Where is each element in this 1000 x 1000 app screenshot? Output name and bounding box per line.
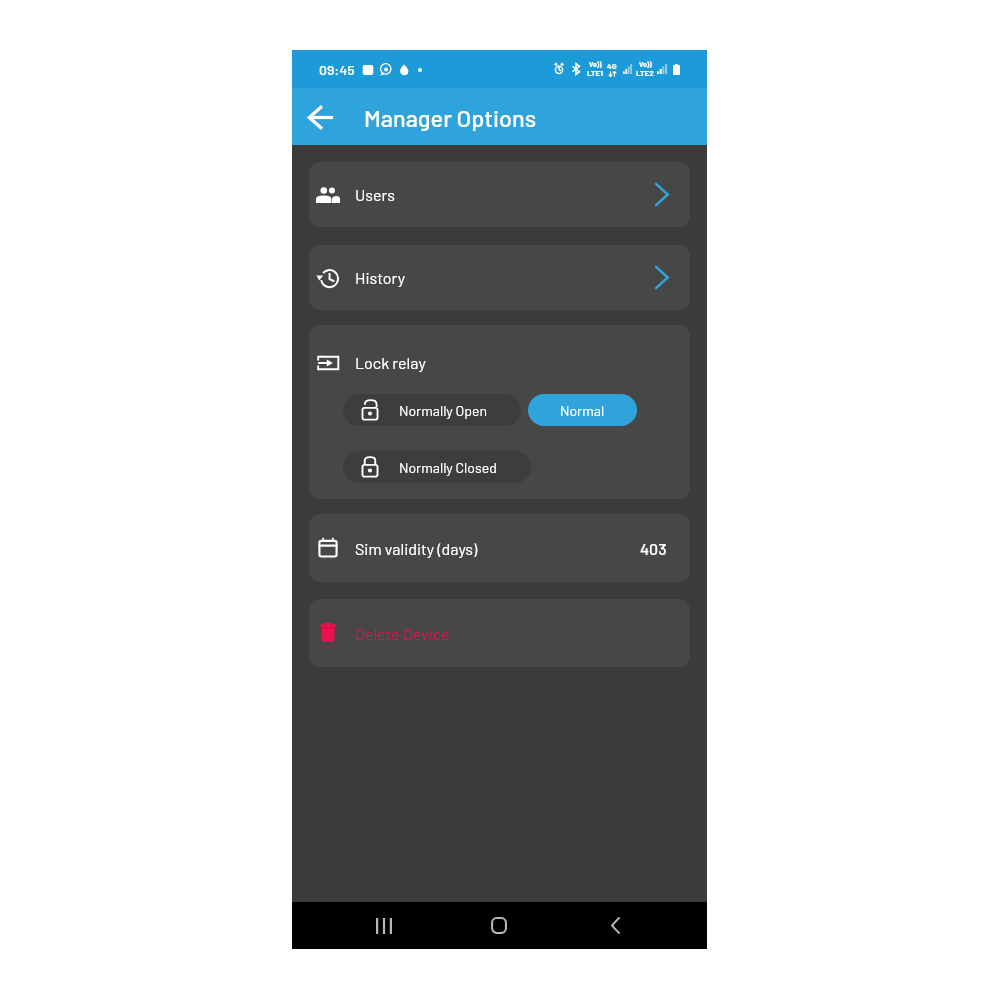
staticText: Normally Closed xyxy=(399,459,497,476)
button[interactable]: Normally Closed xyxy=(343,451,531,483)
staticText: 403 xyxy=(640,539,667,558)
button[interactable]: Normal xyxy=(528,394,637,426)
button[interactable]: Sim validity (days) xyxy=(309,514,690,582)
staticText: Sim validity (days) xyxy=(355,539,478,558)
staticText: LTE1 xyxy=(587,68,604,78)
staticText: Lock relay xyxy=(355,353,426,372)
button[interactable]: Home xyxy=(441,902,557,949)
staticText: 09:45 xyxy=(319,61,355,78)
button[interactable]: Users xyxy=(309,162,690,227)
staticText: LTE2 xyxy=(636,68,654,78)
button[interactable]: Delete Device xyxy=(309,599,690,667)
staticText: Users xyxy=(355,185,396,204)
staticText: Vo)) xyxy=(639,60,652,68)
button[interactable]: Back xyxy=(298,95,342,139)
button[interactable]: History xyxy=(309,245,690,310)
staticText: Delete Device xyxy=(355,624,450,643)
staticText: Normally Open xyxy=(399,402,487,419)
staticText: History xyxy=(355,268,406,287)
button[interactable]: Normally Open xyxy=(343,394,521,426)
staticText: Vo)) xyxy=(589,60,602,68)
button[interactable]: Back xyxy=(557,902,673,949)
staticText: Normal xyxy=(560,402,605,419)
staticText: 4G xyxy=(607,61,617,71)
staticText: Manager Options xyxy=(364,103,537,131)
button[interactable]: Recents xyxy=(326,902,441,949)
